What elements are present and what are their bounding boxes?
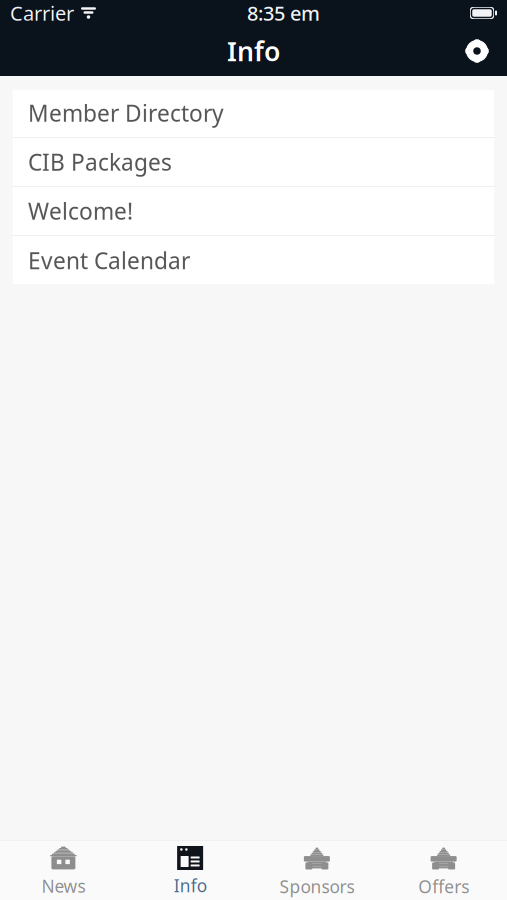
staticText: Event Calendar [28,245,190,275]
staticText: Member Directory [28,98,224,128]
staticText: CIB Packages [28,147,172,177]
button[interactable]: Event Calendar [12,236,495,285]
button[interactable]: Member Directory [12,89,495,138]
staticText: Carrier [10,0,74,26]
button[interactable]: Sponsors [253,839,380,900]
staticText: Sponsors [279,875,354,898]
button[interactable]: Offers [380,839,507,900]
staticText: 8:35 em [247,0,320,26]
button[interactable]: Info [127,840,254,900]
button[interactable]: Welcome! [12,187,495,236]
staticText: Info [227,33,280,69]
staticText: News [41,874,85,897]
staticText: Info [174,874,207,897]
staticText: Offers [418,875,469,898]
button[interactable]: News [0,839,127,900]
staticText: Welcome! [28,196,133,226]
button[interactable]: Settings [455,29,499,73]
button[interactable]: CIB Packages [12,138,495,187]
